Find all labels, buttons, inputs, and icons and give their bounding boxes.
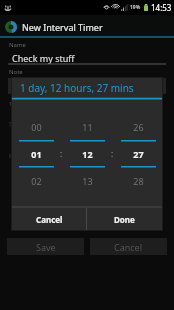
button[interactable]: 27 xyxy=(114,142,162,166)
staticText: : xyxy=(111,148,114,159)
staticText: Start xyxy=(9,120,23,128)
staticText: 02 xyxy=(31,175,42,187)
button[interactable]: 12 xyxy=(63,142,111,166)
button[interactable]: Cancel xyxy=(12,208,86,230)
staticText: 00 xyxy=(31,121,42,133)
staticText: 1 day, 12 hours, 27 mins xyxy=(20,81,134,95)
staticText: 11 xyxy=(82,121,93,133)
button[interactable]: 11 xyxy=(63,114,111,140)
staticText: 19% xyxy=(130,4,141,11)
staticText: 13 xyxy=(82,175,93,187)
other: App icon xyxy=(5,21,17,33)
button[interactable]: 01 xyxy=(12,142,60,166)
button[interactable]: Save xyxy=(7,238,84,255)
staticText: Done xyxy=(114,214,135,225)
staticText: Save xyxy=(36,241,56,253)
staticText: 12 xyxy=(82,148,93,160)
staticText: New Interval Timer xyxy=(22,21,103,33)
button[interactable]: 28 xyxy=(114,168,162,194)
button[interactable]: 13 xyxy=(63,168,111,194)
staticText: Repeat xyxy=(9,152,29,160)
staticText: 26 xyxy=(133,121,144,133)
staticText: Name xyxy=(9,41,26,49)
staticText: 27 xyxy=(133,148,144,160)
button[interactable]: App icon xyxy=(0,15,174,38)
staticText: Note xyxy=(9,68,23,76)
staticText: : xyxy=(60,148,63,159)
button[interactable]: Done xyxy=(87,208,162,230)
button[interactable]: Cancel xyxy=(90,238,167,255)
staticText: Time xyxy=(9,100,23,108)
staticText: Cancel xyxy=(36,214,63,225)
button[interactable]: 00 xyxy=(12,114,60,140)
staticText: Cancel xyxy=(114,241,143,253)
staticText: 28 xyxy=(133,175,144,187)
button[interactable]: 26 xyxy=(114,114,162,140)
staticText: 01 xyxy=(31,148,42,160)
staticText: Check my stuff xyxy=(12,52,75,64)
button[interactable]: 02 xyxy=(12,168,60,194)
staticText: 14:53 xyxy=(151,2,172,13)
